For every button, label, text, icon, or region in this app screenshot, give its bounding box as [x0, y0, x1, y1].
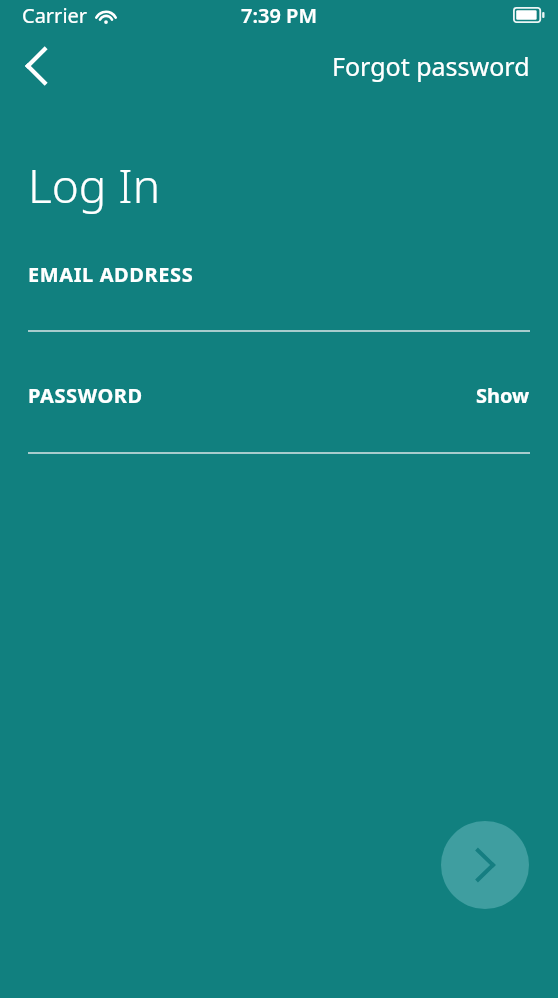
staticText: Show — [476, 382, 530, 409]
button[interactable]: Show — [476, 382, 530, 409]
button[interactable]: Continue — [441, 821, 529, 909]
staticText: Carrier — [22, 2, 88, 29]
staticText: 7:39 PM — [241, 2, 317, 29]
staticText: Forgot password — [332, 49, 530, 83]
staticText: PASSWORD — [28, 382, 143, 409]
button[interactable]: Forgot password — [332, 49, 530, 83]
staticText: EMAIL ADDRESS — [28, 261, 194, 288]
staticText: Log In — [28, 154, 161, 217]
button[interactable]: Back — [10, 39, 64, 93]
